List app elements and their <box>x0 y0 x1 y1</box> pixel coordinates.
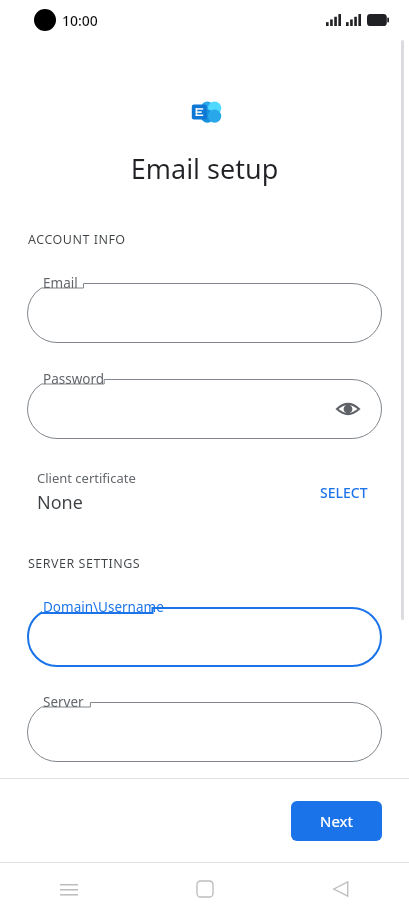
button[interactable]: Next <box>291 801 382 841</box>
button[interactable]: Email <box>27 274 382 343</box>
staticText: Next <box>320 811 353 831</box>
staticText: Client certificate <box>37 469 136 487</box>
staticText: SELECT <box>320 483 368 502</box>
button[interactable]: Client certificate <box>0 465 409 519</box>
button[interactable]: Server <box>27 693 382 762</box>
staticText: Email setup <box>0 150 409 187</box>
button[interactable]: Back <box>273 863 409 914</box>
staticText: Server <box>43 693 84 711</box>
staticText: Domain\Username <box>43 598 164 616</box>
button[interactable]: Domain\Username <box>27 598 382 667</box>
button[interactable]: Show password <box>330 391 366 427</box>
button[interactable]: Home <box>137 863 273 914</box>
button[interactable]: Password <box>27 370 382 439</box>
staticText: Email <box>43 274 78 292</box>
staticText: Password <box>43 370 105 388</box>
staticText: 10:00 <box>62 11 98 30</box>
staticText: ACCOUNT INFO <box>28 231 126 248</box>
button[interactable]: SELECT <box>316 477 372 508</box>
staticText: None <box>37 490 83 515</box>
staticText: SERVER SETTINGS <box>28 555 141 572</box>
button[interactable]: Recent apps <box>0 863 137 914</box>
